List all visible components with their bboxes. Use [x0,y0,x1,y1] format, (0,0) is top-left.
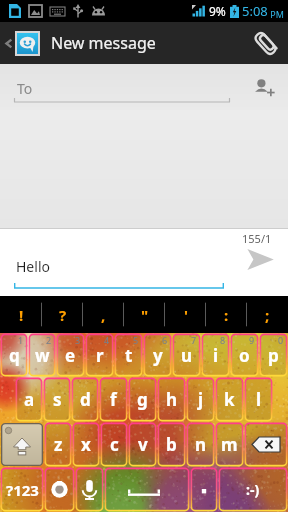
staticText: j [198,388,204,411]
button[interactable]: y [143,333,172,377]
staticText: 5:08 [242,2,268,20]
button[interactable]: j [186,377,215,422]
staticText: New message [51,32,156,54]
staticText: z [54,433,63,456]
staticText: m [221,433,238,456]
button[interactable]: ; [247,296,288,333]
staticText: PM [268,8,284,20]
button[interactable]: Attach file [242,22,288,64]
staticText: p [268,344,279,367]
staticText: g [137,388,148,411]
button[interactable]: l [244,377,273,422]
staticText: x [81,433,91,456]
button[interactable]: v [128,422,157,467]
button[interactable]: a [15,377,43,422]
button[interactable]: i [201,333,230,377]
staticText: 7 [191,334,197,346]
staticText: u [181,344,193,367]
button[interactable]: Add contact [238,64,288,110]
button[interactable]: x [72,422,100,467]
button[interactable]: Voice input [75,467,104,512]
staticText: 5 [133,334,139,346]
staticText: 0 [278,334,284,346]
staticText: o [239,344,250,367]
button[interactable]: d [71,377,99,422]
button[interactable]: c [100,422,128,467]
button[interactable]: ? [42,296,83,333]
staticText: To [17,79,33,98]
button[interactable]: m [215,422,244,467]
staticText: b [166,433,177,456]
button[interactable]: Backspace [244,422,288,467]
staticText: 2 [46,334,52,346]
staticText: t [125,344,133,367]
staticText: a [24,388,35,411]
button[interactable]: , [83,296,124,333]
button[interactable]: Hello [0,229,226,296]
button[interactable]: n [186,422,215,467]
button[interactable]: Space [104,467,190,512]
staticText: h [166,388,178,411]
staticText: l [256,388,262,411]
button[interactable]: b [157,422,186,467]
button[interactable]: ' [165,296,206,333]
button[interactable]: k [215,377,244,422]
button[interactable]: z [44,422,72,467]
staticText: 9% [209,3,226,19]
button[interactable]: " [124,296,165,333]
button[interactable]: h [157,377,186,422]
button[interactable]: o [230,333,259,377]
staticText: ; [265,305,270,325]
button[interactable]: Send [232,229,288,296]
button[interactable] [0,22,44,64]
button[interactable]: :-) [218,467,288,512]
staticText: w [35,344,50,367]
staticText: " [141,305,149,325]
staticText: q [9,344,20,367]
staticText: 4 [104,334,110,346]
button[interactable]: u [172,333,201,377]
staticText: : [224,305,229,325]
staticText: 1 [18,334,24,346]
staticText: f [110,388,117,411]
button[interactable]: s [43,377,71,422]
staticText: 9 [249,334,255,346]
button[interactable]: Period [190,467,218,512]
staticText: r [96,344,104,367]
staticText: s [53,388,62,411]
button[interactable]: g [128,377,157,422]
button[interactable]: t [114,333,143,377]
staticText: , [101,305,106,325]
staticText: 3 [75,334,81,346]
button[interactable]: e [56,333,85,377]
staticText: ? [59,305,67,325]
button[interactable]: Shift [0,422,44,467]
button[interactable]: To [0,64,232,110]
staticText: 6 [162,334,168,346]
staticText: d [80,388,91,411]
staticText: y [153,344,163,367]
button[interactable]: Switch keyboard [44,467,75,512]
staticText: ! [19,305,24,325]
staticText: ' [184,305,188,325]
staticText: k [224,388,235,411]
staticText: 8 [220,334,226,346]
staticText: :-) [246,480,260,499]
staticText: v [138,433,148,456]
button[interactable]: f [99,377,128,422]
button[interactable]: r [85,333,114,377]
staticText: n [195,433,207,456]
button[interactable]: ?123 [0,467,44,512]
staticText: ?123 [6,480,39,500]
button[interactable]: ! [0,296,42,333]
staticText: i [213,344,219,367]
staticText: e [65,344,76,367]
button[interactable]: q [0,333,28,377]
button[interactable]: : [206,296,247,333]
staticText: Hello [16,257,50,276]
staticText: c [110,433,119,456]
button[interactable]: w [28,333,56,377]
button[interactable]: p [259,333,288,377]
staticText: 155/1 [242,231,272,246]
